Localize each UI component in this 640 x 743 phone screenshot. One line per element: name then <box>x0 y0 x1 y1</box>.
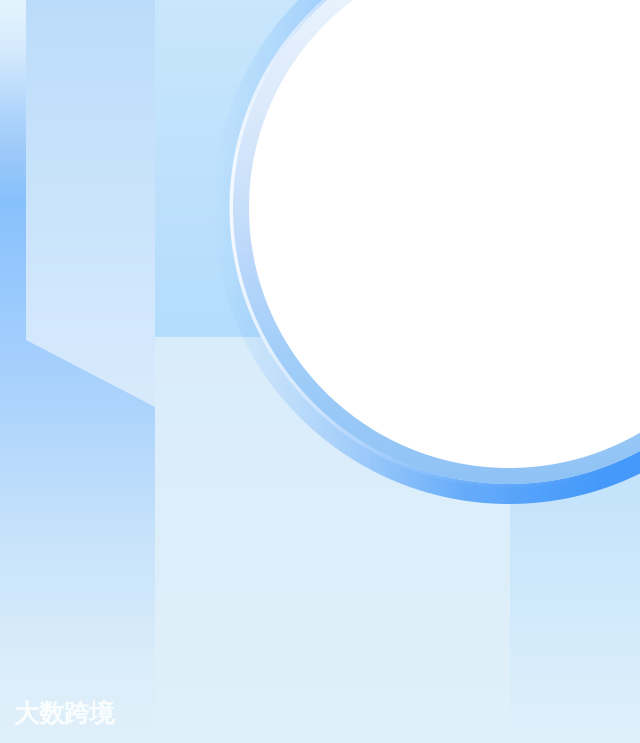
staticText: 大数跨境 <box>14 698 114 729</box>
